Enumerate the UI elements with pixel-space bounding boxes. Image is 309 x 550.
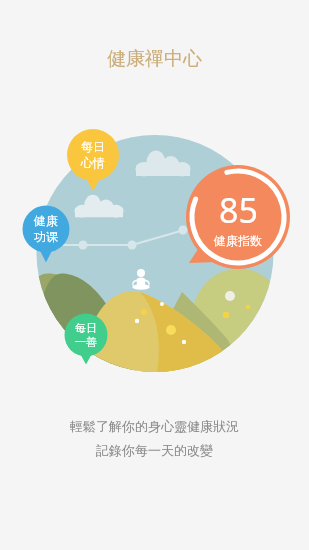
staticText: 健康指数 [214, 233, 262, 248]
staticText: 記錄你每一天的改變 [96, 442, 213, 458]
staticText: 健康禪中心 [0, 47, 309, 71]
button[interactable]: 每日 心情 [63, 137, 123, 173]
button[interactable]: 85 [193, 181, 283, 253]
staticText: 輕鬆了解你的身心靈健康狀況 [70, 418, 239, 434]
staticText: 每日 一善 [75, 321, 97, 349]
staticText: 健康 功课 [34, 213, 58, 245]
staticText: 85 [219, 187, 258, 233]
button[interactable]: 健康 功课 [16, 211, 76, 247]
staticText: 每日 心情 [81, 139, 105, 171]
button[interactable]: 每日 一善 [56, 317, 116, 353]
